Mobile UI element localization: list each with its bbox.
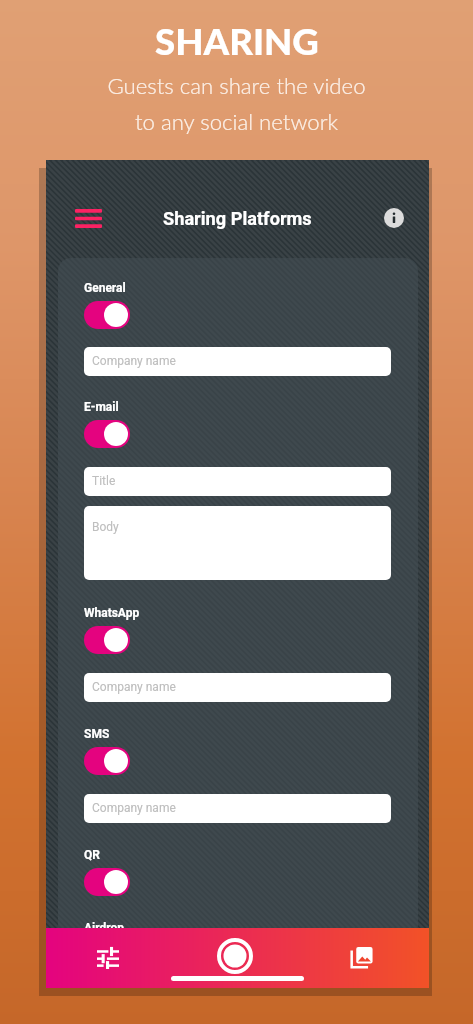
button[interactable]: Toggle: [84, 747, 130, 775]
button[interactable]: Settings: [91, 940, 125, 974]
button[interactable]: Toggle: [84, 420, 130, 448]
staticText: QR: [84, 848, 100, 862]
button[interactable]: Record: [213, 934, 257, 978]
staticText: SHARING: [155, 19, 319, 63]
button[interactable]: Company name: [84, 794, 391, 823]
staticText: Title: [92, 474, 116, 488]
staticText: Body: [92, 520, 119, 534]
button[interactable]: Gallery: [345, 940, 379, 974]
staticText: General: [84, 281, 126, 295]
button[interactable]: Info: [384, 208, 404, 228]
staticText: Airdrop: [84, 921, 125, 928]
staticText: WhatsApp: [84, 606, 140, 620]
button[interactable]: Toggle: [84, 626, 130, 654]
button[interactable]: Company name: [84, 673, 391, 702]
button[interactable]: Body: [84, 506, 391, 580]
button[interactable]: Company name: [84, 347, 391, 376]
staticText: Company name: [92, 680, 176, 694]
staticText: Guests can share the video to any social…: [107, 72, 366, 134]
button[interactable]: Menu: [68, 198, 108, 238]
staticText: Sharing Platforms: [163, 208, 312, 229]
staticText: Company name: [92, 354, 176, 368]
button[interactable]: Toggle: [84, 301, 130, 329]
button[interactable]: Toggle: [84, 868, 130, 896]
staticText: E-mail: [84, 400, 119, 414]
button[interactable]: Title: [84, 467, 391, 496]
staticText: Company name: [92, 801, 176, 815]
staticText: SMS: [84, 727, 110, 741]
